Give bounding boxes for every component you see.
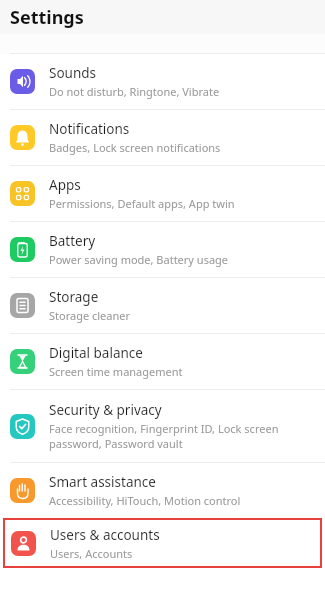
- staticText: Notifications: [49, 120, 130, 138]
- staticText: Battery: [49, 232, 96, 250]
- other: Notifications: [10, 125, 35, 150]
- button[interactable]: Battery: [0, 222, 325, 278]
- button[interactable]: Sounds: [0, 54, 325, 110]
- other: Sounds: [10, 69, 35, 94]
- staticText: Badges, Lock screen notifications: [49, 140, 221, 155]
- button[interactable]: Users and accounts: [3, 518, 322, 568]
- button[interactable]: Security and privacy: [0, 390, 325, 463]
- staticText: Digital balance: [49, 344, 143, 362]
- staticText: Settings: [10, 5, 84, 30]
- staticText: Permissions, Default apps, App twin: [49, 196, 235, 211]
- staticText: Accessibility, HiTouch, Motion control: [49, 493, 241, 508]
- button[interactable]: Storage: [0, 278, 325, 334]
- other: Security and privacy: [10, 414, 35, 439]
- button[interactable]: Apps: [0, 166, 325, 222]
- other: Apps: [10, 181, 35, 206]
- staticText: Security & privacy: [49, 401, 162, 419]
- other: Battery: [10, 237, 35, 262]
- other: Digital balance: [10, 349, 35, 374]
- button[interactable]: Notifications: [0, 110, 325, 166]
- button[interactable]: Smart assistance: [0, 463, 325, 518]
- staticText: Apps: [49, 176, 81, 194]
- staticText: Screen time management: [49, 364, 183, 379]
- staticText: Face recognition, Fingerprint ID, Lock s…: [49, 421, 279, 451]
- staticText: Smart assistance: [49, 473, 156, 491]
- button[interactable]: Digital balance: [0, 334, 325, 390]
- staticText: Do not disturb, Ringtone, Vibrate: [49, 84, 220, 99]
- other: Users and accounts: [11, 531, 36, 556]
- staticText: Power saving mode, Battery usage: [49, 252, 229, 267]
- staticText: Users, Accounts: [50, 546, 133, 561]
- other: Storage: [10, 293, 35, 318]
- staticText: Sounds: [49, 64, 97, 82]
- staticText: Storage: [49, 288, 99, 306]
- other: Smart assistance: [10, 478, 35, 503]
- staticText: Users & accounts: [50, 526, 160, 544]
- staticText: Storage cleaner: [49, 308, 131, 323]
